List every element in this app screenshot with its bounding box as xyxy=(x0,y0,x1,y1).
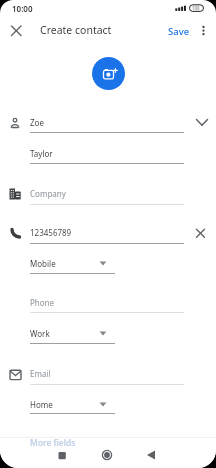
staticText: Create contact xyxy=(40,23,112,37)
staticText: More fields xyxy=(30,437,76,449)
button[interactable] xyxy=(143,447,160,464)
staticText: 100 xyxy=(192,5,200,11)
button[interactable]: Phone xyxy=(28,292,187,316)
button[interactable]: Taylor xyxy=(28,143,187,167)
button[interactable]: Mobile xyxy=(28,253,120,277)
button[interactable] xyxy=(197,22,210,39)
button[interactable]: 123456789 xyxy=(28,222,187,246)
button[interactable]: Zoe xyxy=(28,112,187,136)
button[interactable]: Work xyxy=(28,323,120,347)
button[interactable]: More fields xyxy=(26,434,90,450)
button[interactable] xyxy=(192,113,210,131)
button[interactable] xyxy=(54,447,71,464)
staticText: Company xyxy=(30,188,66,199)
staticText: Work xyxy=(30,328,50,339)
button[interactable] xyxy=(193,226,209,242)
button[interactable] xyxy=(9,23,24,38)
staticText: Zoe xyxy=(30,117,44,128)
button[interactable]: Save xyxy=(161,21,193,39)
staticText: Email xyxy=(30,368,51,379)
button[interactable] xyxy=(99,447,116,464)
staticText: Mobile xyxy=(30,258,56,269)
staticText: 10:00 xyxy=(12,3,33,14)
staticText: Save xyxy=(168,25,190,38)
staticText: Taylor xyxy=(30,148,53,159)
staticText: Phone xyxy=(30,297,55,308)
staticText: 123456789 xyxy=(30,227,72,238)
button[interactable]: Company xyxy=(28,183,187,207)
staticText: Home xyxy=(30,399,53,410)
button[interactable]: Home xyxy=(28,394,120,418)
button[interactable] xyxy=(92,57,125,90)
button[interactable]: Email xyxy=(28,363,187,387)
